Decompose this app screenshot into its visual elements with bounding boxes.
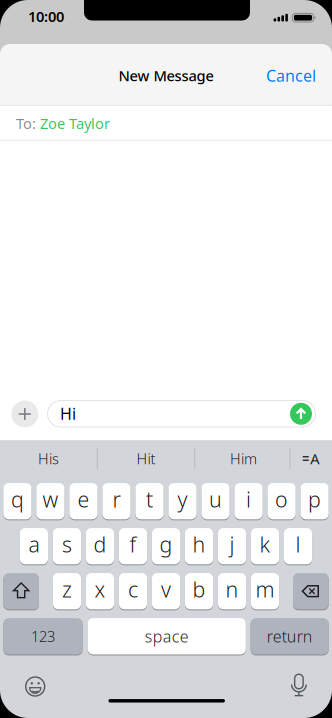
button[interactable]: d [86,528,114,565]
button[interactable]: To: [16,107,332,139]
staticText: t [146,485,153,513]
button[interactable]: t [135,483,164,520]
button[interactable] [290,403,312,425]
button[interactable]: i [234,483,263,520]
staticText: Cancel [266,65,316,86]
staticText: q [11,485,24,513]
button[interactable]: q [3,483,31,520]
staticText: b [192,575,205,603]
button[interactable]: Him [198,443,288,473]
button[interactable] [11,400,38,427]
button[interactable]: k [251,528,279,565]
staticText: l [296,530,301,558]
button[interactable]: Cancel [216,60,316,90]
staticText: To: [16,113,36,133]
button[interactable]: v [152,573,180,610]
staticText: 123 [31,627,55,646]
button[interactable] [293,573,329,610]
button[interactable]: n [218,573,246,610]
button[interactable]: A [296,443,326,473]
button[interactable]: space [88,618,246,655]
button[interactable]: 123 [3,618,83,655]
button[interactable]: g [152,528,180,565]
button[interactable]: m [251,573,279,610]
button[interactable]: Hit [101,443,191,473]
button[interactable] [20,671,50,701]
staticText: Him [230,449,257,468]
button[interactable]: h [185,528,213,565]
button[interactable]: Hi [47,400,316,428]
button[interactable]: a [20,528,48,565]
staticText: r [112,485,120,513]
staticText: x [94,575,105,603]
staticText: His [38,449,59,468]
staticText: o [275,485,288,513]
staticText: k [259,530,270,558]
button[interactable] [3,573,39,610]
staticText: p [308,485,321,513]
staticText: n [226,575,239,603]
button[interactable]: j [218,528,246,565]
button[interactable]: u [201,483,230,520]
staticText: e [77,485,89,513]
staticText: d [93,530,106,558]
button[interactable]: p [300,483,329,520]
button[interactable]: r [102,483,131,520]
staticText: Hi [60,403,76,424]
staticText: v [161,575,171,603]
staticText: space [145,626,189,647]
staticText: return [267,626,313,647]
button[interactable]: l [284,528,312,565]
button[interactable] [284,671,314,701]
staticText: c [128,575,138,603]
staticText: New Message [118,66,213,85]
staticText: a [28,530,39,558]
button[interactable]: y [168,483,197,520]
button[interactable]: b [185,573,213,610]
staticText: y [177,485,187,513]
button[interactable]: His [3,443,93,473]
staticText: f [129,530,136,558]
staticText: w [42,485,58,513]
staticText: s [62,530,72,558]
button[interactable]: s [53,528,81,565]
button[interactable]: f [119,528,147,565]
button[interactable]: return [251,618,329,655]
staticText: u [209,485,222,513]
staticText: 10:00 [28,6,64,26]
staticText: A [310,449,319,468]
button[interactable]: e [69,483,97,520]
staticText: Hit [136,449,155,468]
staticText: m [256,575,275,603]
button[interactable]: o [267,483,296,520]
button[interactable]: z [53,573,81,610]
staticText: z [62,575,72,603]
button[interactable]: w [36,483,64,520]
staticText: h [192,530,205,558]
staticText: g [159,530,172,558]
staticText: Zoe Taylor [40,113,110,133]
staticText: j [229,530,234,558]
button[interactable]: c [119,573,147,610]
button[interactable]: x [86,573,114,610]
staticText: i [246,485,251,513]
